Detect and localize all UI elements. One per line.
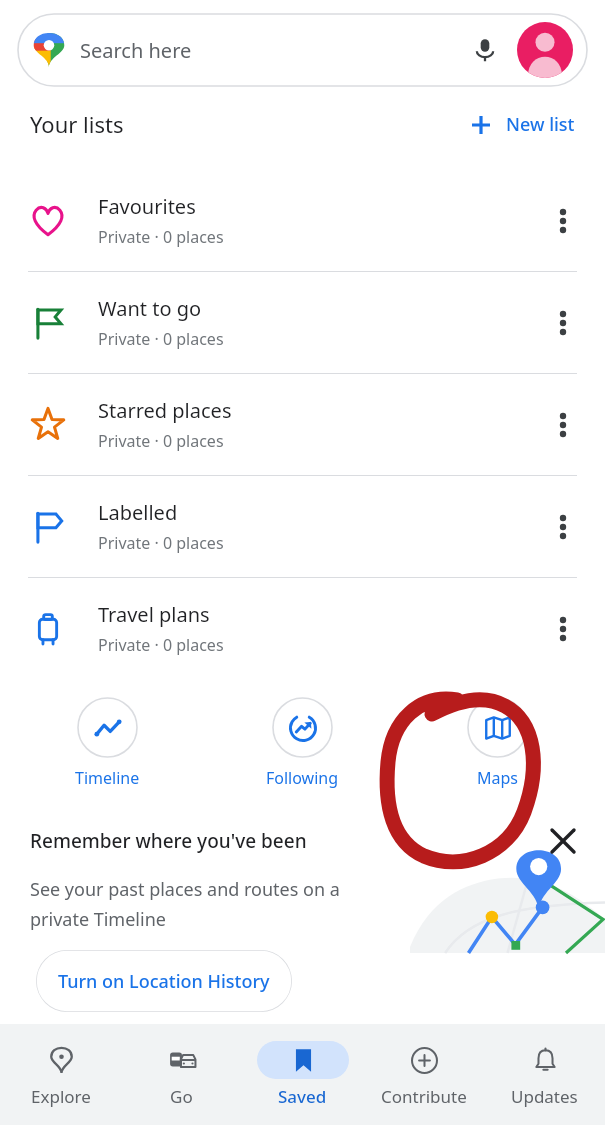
- button[interactable]: Contribute: [363, 1024, 484, 1125]
- button[interactable]: Following: [205, 693, 400, 793]
- staticText: Private · 0 places: [98, 532, 224, 554]
- staticText: Following: [266, 767, 339, 789]
- staticText: private Timeline: [30, 907, 166, 932]
- button[interactable]: More options for Want to go: [539, 299, 587, 347]
- button[interactable]: More options for Favourites: [539, 197, 587, 245]
- staticText: Starred places: [98, 397, 232, 424]
- staticText: Go: [170, 1085, 193, 1108]
- button[interactable]: More options for Travel plans: [539, 605, 587, 653]
- button[interactable]: Explore: [0, 1024, 121, 1125]
- button[interactable]: New list: [462, 106, 583, 143]
- staticText: Labelled: [98, 499, 178, 526]
- button[interactable]: More options for Labelled: [539, 503, 587, 551]
- staticText: Updates: [511, 1085, 578, 1108]
- staticText: Saved: [278, 1085, 327, 1108]
- button[interactable]: Go: [121, 1024, 242, 1125]
- staticText: Private · 0 places: [98, 430, 224, 452]
- staticText: Remember where you've been: [30, 828, 541, 854]
- button[interactable]: Search here: [18, 14, 587, 86]
- button[interactable]: Voice search: [465, 30, 505, 70]
- staticText: Private · 0 places: [98, 634, 224, 656]
- button[interactable]: Updates: [484, 1024, 605, 1125]
- staticText: New list: [506, 112, 575, 137]
- staticText: Your lists: [30, 109, 124, 139]
- staticText: See your past places and routes on a: [30, 877, 340, 902]
- staticText: Want to go: [98, 295, 202, 322]
- button[interactable]: Maps: [400, 693, 595, 793]
- staticText: Explore: [31, 1085, 91, 1108]
- button[interactable]: Starred places: [0, 374, 605, 475]
- staticText: Private · 0 places: [98, 328, 224, 350]
- staticText: Turn on Location History: [58, 969, 270, 994]
- button[interactable]: Dismiss: [541, 819, 585, 863]
- staticText: Favourites: [98, 193, 196, 220]
- button[interactable]: Saved: [242, 1024, 363, 1125]
- button[interactable]: Account: [517, 22, 573, 78]
- button[interactable]: Travel plans: [0, 578, 605, 679]
- staticText: Maps: [477, 767, 518, 789]
- button[interactable]: Want to go: [0, 272, 605, 373]
- staticText: Travel plans: [98, 601, 210, 628]
- button[interactable]: Timeline: [10, 693, 205, 793]
- staticText: Contribute: [381, 1085, 467, 1108]
- button[interactable]: Favourites: [0, 170, 605, 271]
- staticText: Timeline: [75, 767, 140, 789]
- button[interactable]: More options for Starred places: [539, 401, 587, 449]
- button[interactable]: Turn on Location History: [36, 950, 292, 1012]
- button[interactable]: Labelled: [0, 476, 605, 577]
- staticText: Private · 0 places: [98, 226, 224, 248]
- staticText: Search here: [80, 37, 465, 64]
